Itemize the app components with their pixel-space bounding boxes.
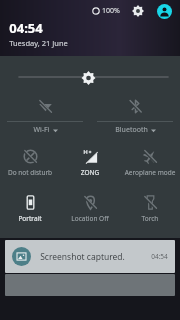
staticText: Wi-Fi bbox=[33, 125, 50, 135]
staticText: ZONG bbox=[60, 168, 120, 177]
staticText: Portrait bbox=[0, 214, 60, 223]
button[interactable]: Torch bbox=[120, 192, 180, 232]
staticText: Location Off bbox=[60, 214, 120, 223]
staticText: 04:54 bbox=[151, 252, 168, 261]
staticText: Bluetooth bbox=[115, 125, 148, 135]
button[interactable]: Settings bbox=[130, 3, 146, 19]
staticText: Torch bbox=[120, 214, 180, 223]
staticText: Tuesday, 21 June bbox=[9, 38, 68, 48]
staticText: Screenshot captured. bbox=[40, 251, 125, 263]
staticText: 04:54 bbox=[9, 19, 43, 37]
button[interactable]: Bluetooth bbox=[97, 92, 173, 138]
button[interactable]: Wi-Fi bbox=[7, 92, 83, 138]
staticText: Aeroplane mode bbox=[120, 168, 180, 177]
button[interactable]: ZONG bbox=[60, 146, 120, 186]
button[interactable]: Location Off bbox=[60, 192, 120, 232]
button[interactable]: Portrait bbox=[0, 192, 60, 232]
staticText: 100% bbox=[102, 6, 120, 16]
button[interactable]: Screenshot captured. bbox=[5, 240, 175, 273]
button[interactable] bbox=[9, 70, 168, 84]
button[interactable]: Aeroplane mode bbox=[120, 146, 180, 186]
staticText: Do not disturb bbox=[0, 168, 60, 177]
button[interactable]: Do not disturb bbox=[0, 146, 60, 186]
button[interactable]: User profile bbox=[156, 3, 172, 19]
